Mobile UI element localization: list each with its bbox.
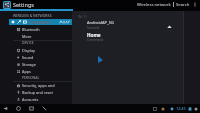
staticText: Secured	[87, 26, 100, 30]
staticText: Backup and reset	[22, 90, 53, 95]
staticText: Apps	[22, 69, 31, 74]
staticText: WIRELESS & NETWORKS	[13, 13, 52, 18]
staticText: Settings	[13, 1, 34, 8]
staticText: Security, apps and	[22, 83, 55, 88]
button[interactable]: More options	[194, 2, 196, 7]
staticText: Home	[87, 32, 101, 38]
staticText: Connected	[87, 38, 104, 42]
staticText: AndroidAP_5G	[87, 20, 114, 25]
staticText: Display	[22, 48, 35, 53]
staticText: Wi-Fi	[78, 14, 87, 19]
button[interactable]: Back	[2, 105, 9, 112]
button[interactable]: Storage	[17, 61, 72, 67]
staticText: Accounts	[22, 97, 39, 102]
button[interactable]: Recent apps	[28, 105, 35, 112]
staticText: More	[22, 34, 32, 39]
staticText: PERSONAL	[22, 75, 40, 80]
staticText: Search	[176, 2, 190, 8]
button[interactable]: Sound	[17, 54, 72, 60]
staticText: Storage	[22, 62, 36, 67]
button[interactable]: Screenshot	[41, 105, 48, 112]
staticText: Bluetooth	[22, 27, 40, 32]
button[interactable]	[9, 19, 72, 25]
button[interactable]: Backup and reset	[17, 89, 72, 95]
staticText: 12:45	[176, 106, 186, 111]
staticText: Wireless network	[137, 2, 171, 8]
button[interactable]: Accounts	[17, 96, 72, 102]
staticText: DEVICE	[22, 40, 34, 45]
button[interactable]: App icon	[3, 1, 11, 9]
button[interactable]: Apps	[17, 68, 72, 74]
staticText: Sound	[22, 55, 34, 60]
button[interactable]: Bluetooth	[17, 26, 72, 32]
button[interactable]: Home	[15, 105, 22, 112]
button[interactable]: Security, apps and	[17, 82, 72, 88]
button[interactable]: Display	[17, 47, 72, 53]
